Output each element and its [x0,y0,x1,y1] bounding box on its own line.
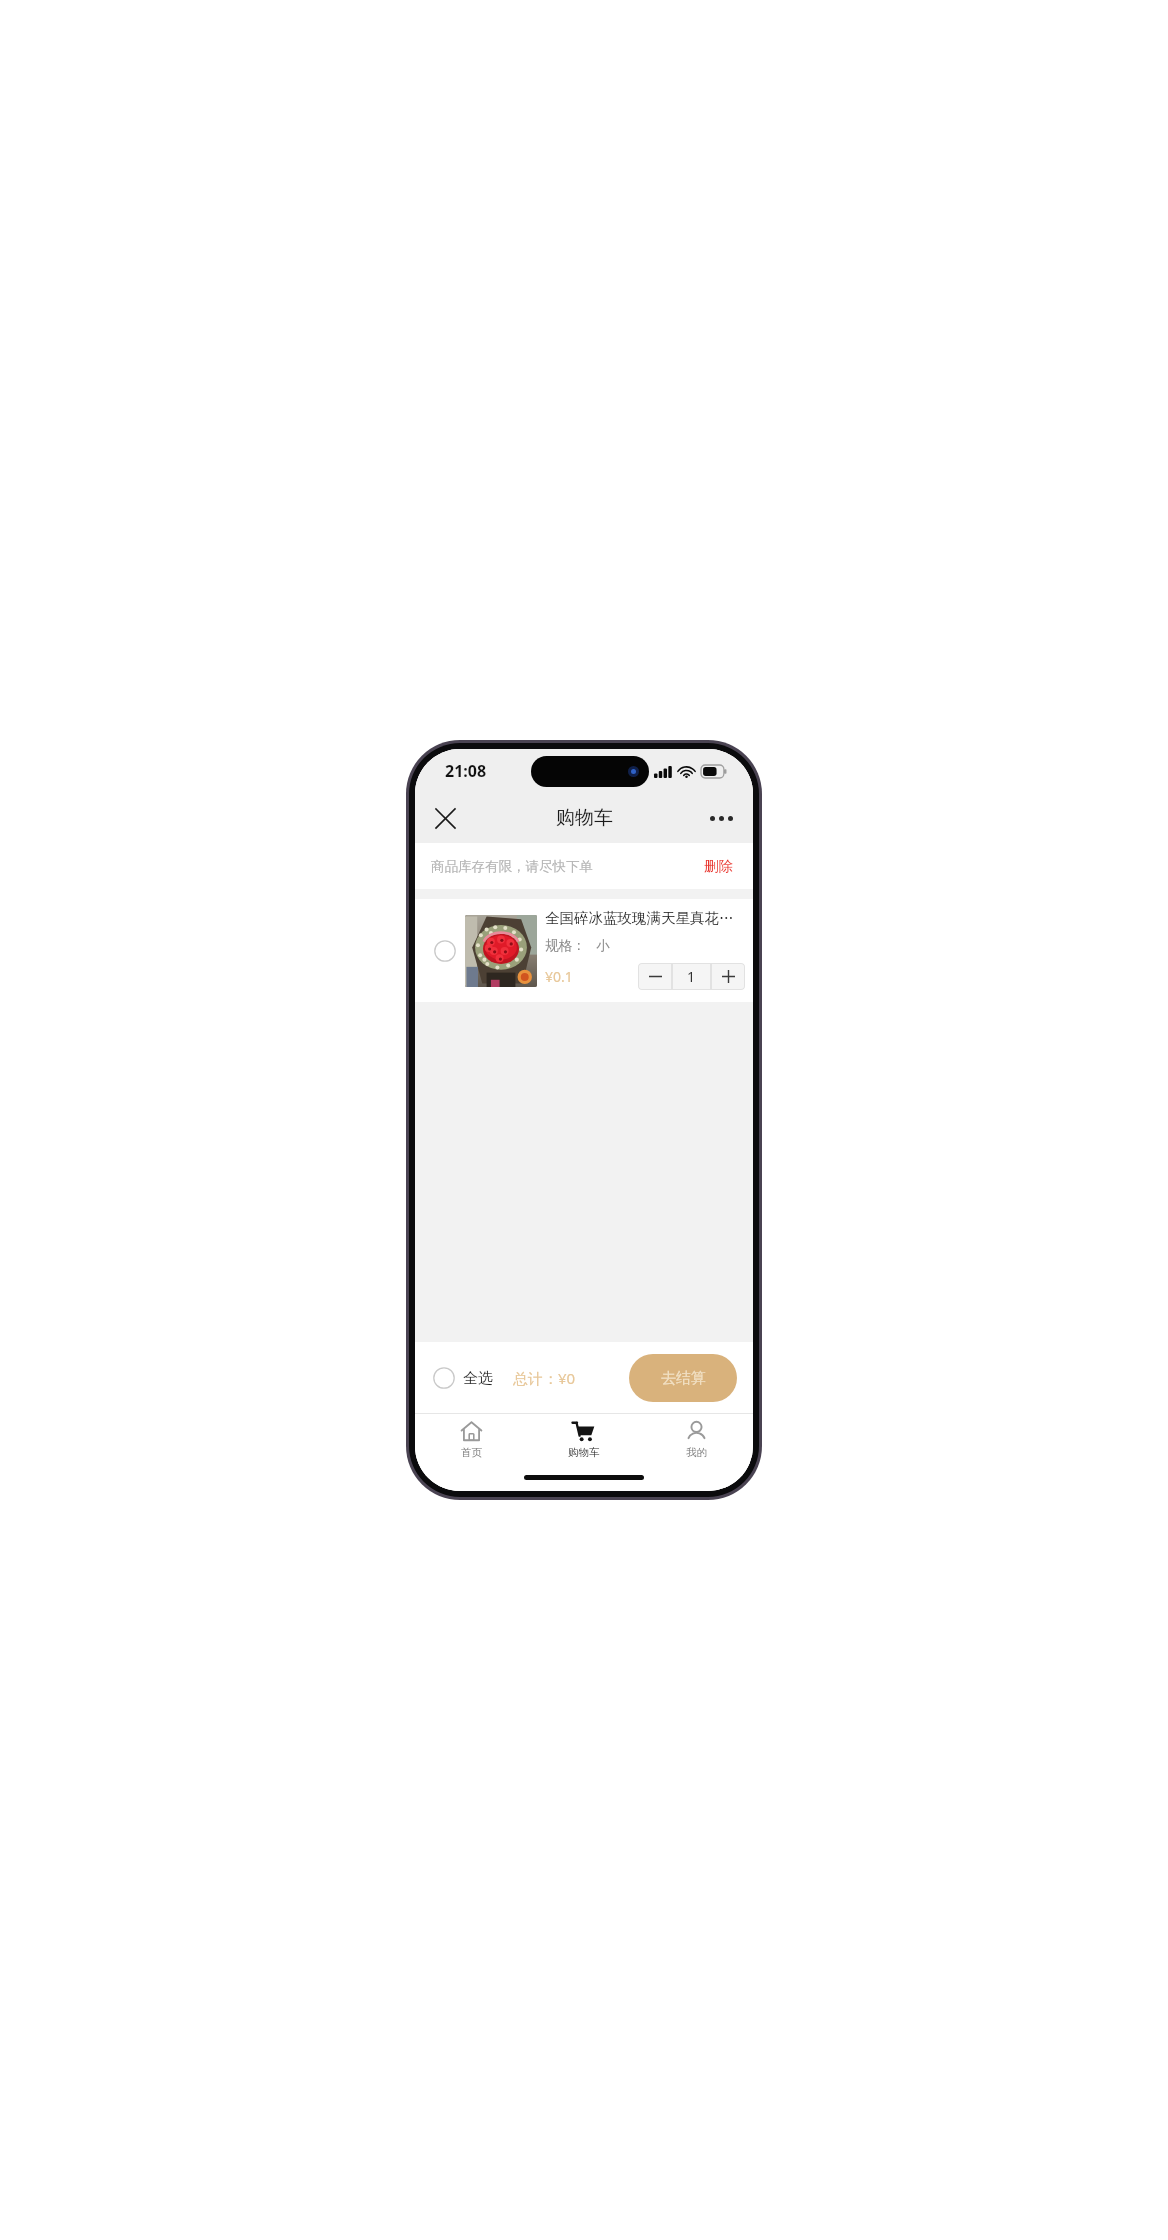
staticText: 购物车 [568,1446,600,1459]
button[interactable]: 我的 [640,1414,753,1469]
staticText: 我的 [686,1446,707,1459]
staticText: 购物车 [556,806,613,830]
staticText: 首页 [461,1446,482,1459]
button[interactable]: Increase quantity [711,963,745,990]
button[interactable]: Close [423,796,467,840]
button[interactable]: 删除 [700,853,737,879]
button[interactable]: 首页 [415,1414,527,1469]
staticText: 总计：¥0 [513,1368,576,1388]
staticText: 商品库存有限，请尽快下单 [431,858,593,875]
button[interactable]: 去结算 [629,1354,737,1402]
button[interactable]: Select item [427,933,463,969]
staticText: 小 [596,937,610,954]
staticText: 21:08 [445,760,487,782]
staticText: 全选 [463,1369,493,1388]
staticText: 1 [687,967,696,986]
button[interactable]: More options [699,796,743,840]
staticText: ¥0.1 [545,967,573,986]
staticText: 规格： [545,937,586,954]
staticText: 全国碎冰蓝玫瑰满天星真花束鲜花速递同城 [545,909,745,927]
button[interactable]: 购物车 [527,1414,640,1469]
button[interactable]: 全选 [431,1361,495,1395]
staticText: 删除 [704,857,733,875]
staticText: 去结算 [661,1369,706,1388]
button[interactable]: Decrease quantity [638,963,672,990]
button[interactable]: Select item [415,899,753,1002]
